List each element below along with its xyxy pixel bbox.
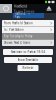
staticText: From: Hatfield Station bbox=[4, 21, 33, 25]
staticText: Hatfield bbox=[13, 3, 26, 8]
staticText: Refresh bbox=[22, 66, 33, 70]
button[interactable]: Refresh bbox=[17, 65, 38, 71]
button[interactable]: Show Timetable bbox=[4, 57, 52, 63]
button[interactable]: Key: Tuesday to Friday bbox=[2, 33, 54, 39]
button[interactable]: To: Park Station bbox=[2, 26, 54, 33]
staticText: Shows: Next 4 trains bbox=[4, 41, 30, 44]
button[interactable]: Next train to Park at 18:04 bbox=[3, 49, 53, 55]
staticText: Hatfield → Park bbox=[14, 12, 30, 19]
button[interactable]: Share bbox=[46, 5, 52, 11]
staticText: Key: Tuesday to Friday bbox=[4, 34, 32, 38]
staticText: Train Times bbox=[13, 8, 34, 14]
staticText: Show Timetable bbox=[17, 58, 38, 62]
staticText: To: Park Station bbox=[4, 28, 24, 31]
staticText: Next train to Park at 18:04 bbox=[10, 50, 45, 54]
button[interactable]: From: Hatfield Station bbox=[2, 20, 54, 26]
button[interactable]: Shows: Next 4 trains bbox=[2, 39, 54, 46]
